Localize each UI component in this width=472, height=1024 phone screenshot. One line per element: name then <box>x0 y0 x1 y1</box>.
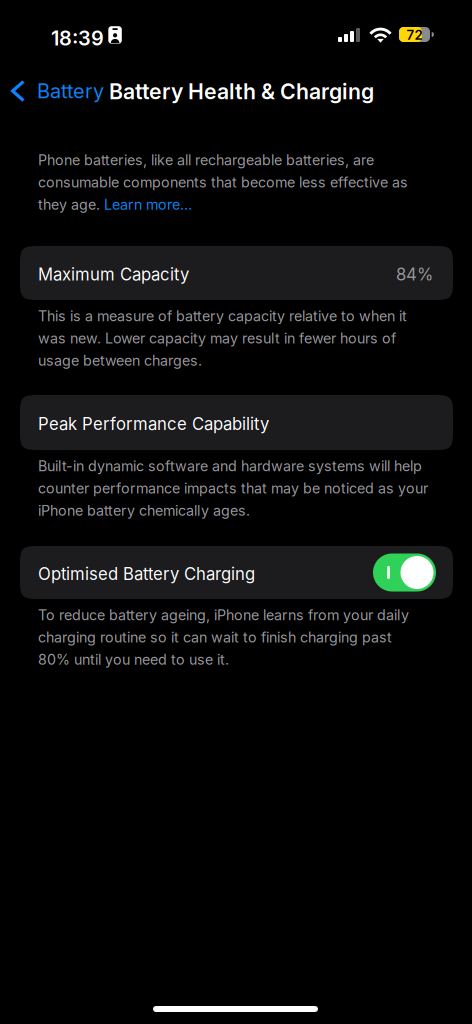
staticText: 18:39 <box>51 26 104 50</box>
button[interactable]: Learn more… <box>104 196 192 213</box>
staticText: Maximum Capacity <box>38 264 189 285</box>
staticText: they age. <box>38 196 104 213</box>
staticText: Peak Performance Capability <box>38 414 269 434</box>
staticText: Battery Health & Charging <box>109 78 374 104</box>
staticText: Phone batteries, like all rechargeable b… <box>38 151 374 169</box>
button[interactable]: Maximum Capacity <box>20 246 453 300</box>
staticText: Battery <box>37 79 104 103</box>
staticText: Learn more… <box>104 196 192 213</box>
staticText: 80% until you need to use it. <box>38 651 229 668</box>
staticText: was new. Lower capacity may result in fe… <box>38 330 396 347</box>
button[interactable]: Optimised Battery Charging <box>20 546 453 599</box>
button[interactable]: Battery <box>10 72 106 110</box>
staticText: To reduce battery ageing, iPhone learns … <box>38 606 409 624</box>
staticText: counter performance impacts that may be … <box>38 480 428 497</box>
staticText: charging routine so it can wait to finis… <box>38 629 392 646</box>
button[interactable]: Peak Performance Capability <box>20 395 453 450</box>
staticText: 72 <box>406 27 422 43</box>
staticText: Built-in dynamic software and hardware s… <box>38 457 422 475</box>
staticText: 84% <box>396 264 433 285</box>
staticText: consumable components that become less e… <box>38 174 408 191</box>
staticText: Optimised Battery Charging <box>38 564 255 584</box>
staticText: This is a measure of battery capacity re… <box>38 307 407 325</box>
staticText: usage between charges. <box>38 352 202 369</box>
staticText: iPhone battery chemically ages. <box>38 502 250 519</box>
